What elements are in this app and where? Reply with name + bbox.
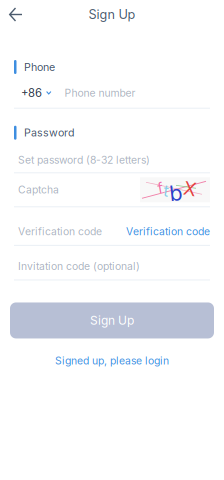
staticText: Signed up, please login	[55, 354, 169, 367]
button[interactable]: Refresh captcha	[140, 177, 210, 202]
staticText: f	[157, 179, 162, 197]
button[interactable]: +86	[21, 86, 51, 100]
staticText: Phone	[24, 60, 55, 73]
staticText: Sign Up	[88, 7, 135, 22]
staticText: Password	[24, 126, 75, 139]
button[interactable]: Back	[0, 0, 32, 29]
button[interactable]: Signed up, please login	[55, 349, 169, 372]
staticText: Verification code	[18, 225, 102, 238]
button[interactable]: Verification code	[126, 225, 210, 238]
staticText: b	[169, 180, 182, 206]
staticText: Set password (8-32 letters)	[18, 154, 150, 166]
staticText: Phone number	[64, 87, 135, 99]
staticText: X	[183, 177, 196, 200]
staticText: Sign Up	[90, 313, 134, 328]
staticText: Captcha	[18, 183, 59, 196]
staticText: t	[163, 181, 168, 200]
staticText: Invitation code (optional)	[18, 260, 140, 272]
staticText: +86	[21, 86, 42, 100]
button[interactable]: Sign Up	[0, 302, 224, 338]
staticText: Verification code	[126, 225, 210, 238]
